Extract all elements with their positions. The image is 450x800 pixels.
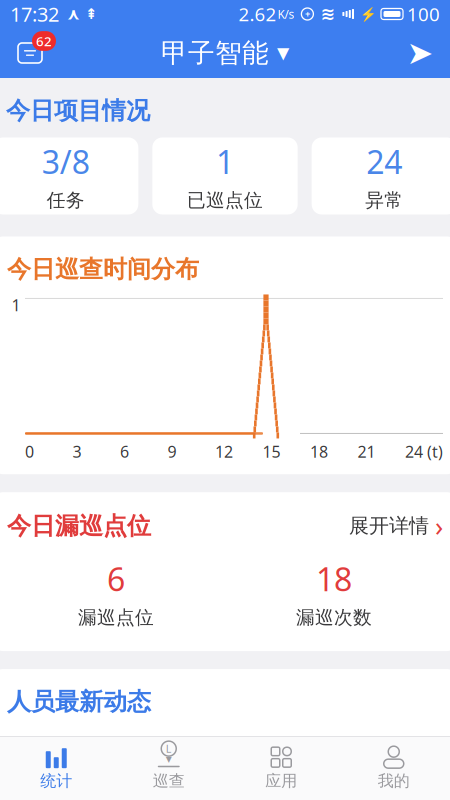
staticText: 3/8: [42, 140, 90, 183]
button[interactable]: 24: [312, 137, 450, 214]
staticText: 人员最新动态: [7, 687, 151, 716]
staticText: 1: [11, 294, 20, 315]
button[interactable]: 3/8: [0, 137, 138, 214]
staticText: 展开详情: [349, 514, 429, 538]
staticText: L: [166, 741, 172, 756]
staticText: ➤: [406, 35, 433, 71]
staticText: 今日项目情况: [6, 96, 150, 125]
staticText: 应用: [265, 771, 297, 791]
button[interactable]: 1: [152, 137, 298, 214]
staticText: 17:32: [10, 1, 59, 27]
staticText: 21: [357, 441, 375, 462]
button[interactable]: Messages: [8, 31, 52, 75]
staticText: 今日巡查时间分布: [7, 254, 199, 284]
staticText: 今日漏巡点位: [7, 511, 151, 541]
staticText: ⋏: [67, 5, 80, 23]
staticText: 24: [366, 140, 402, 183]
staticText: 漏巡次数: [296, 606, 372, 629]
staticText: 任务: [47, 189, 85, 212]
staticText: 6: [107, 558, 125, 600]
staticText: 3: [72, 441, 81, 462]
staticText: ⚡: [360, 6, 377, 22]
staticText: 100: [407, 2, 440, 26]
staticText: K/s: [277, 6, 294, 22]
staticText: 巡查: [153, 771, 185, 791]
staticText: 统计: [40, 771, 72, 791]
staticText: 我的: [378, 771, 410, 791]
staticText: 已巡点位: [187, 189, 263, 212]
staticText: 漏巡点位: [78, 606, 154, 629]
staticText: 24 (t): [405, 441, 443, 462]
staticText: 2.62: [238, 2, 276, 26]
staticText: ›: [435, 508, 443, 544]
staticText: 1: [216, 140, 234, 183]
staticText: 6: [120, 441, 129, 462]
staticText: 62: [36, 32, 52, 50]
staticText: 异常: [365, 189, 403, 212]
staticText: ▼: [277, 44, 289, 62]
staticText: ⇞: [85, 6, 97, 22]
staticText: 9: [167, 441, 176, 462]
staticText: +: [305, 8, 310, 20]
staticText: 0: [25, 441, 34, 462]
staticText: 12: [215, 441, 233, 462]
button[interactable]: Send: [398, 31, 442, 75]
staticText: ≋: [320, 4, 335, 24]
button[interactable]: L: [112, 737, 225, 800]
staticText: 18: [310, 441, 328, 462]
button[interactable]: 我的: [337, 737, 450, 800]
staticText: ▾: [166, 752, 172, 766]
staticText: 18: [316, 558, 352, 600]
staticText: 甲子智能: [161, 37, 269, 69]
button[interactable]: 统计: [0, 737, 112, 800]
button[interactable]: 展开详情: [349, 508, 443, 544]
staticText: 15: [262, 441, 280, 462]
button[interactable]: 甲子智能: [161, 37, 289, 69]
button[interactable]: 应用: [225, 737, 337, 800]
